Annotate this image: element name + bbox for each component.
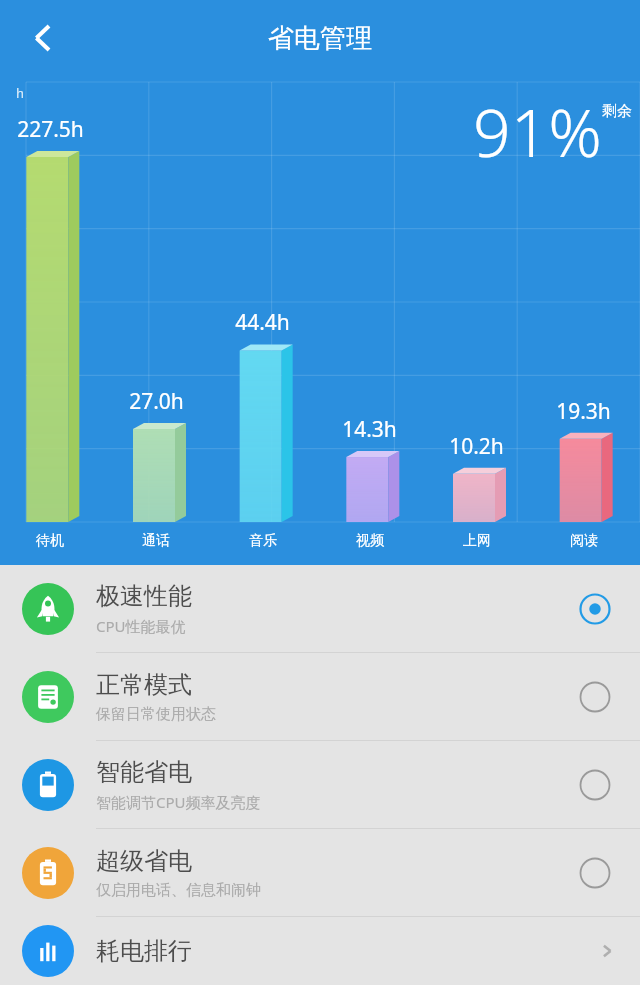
button[interactable]: 极速性能 xyxy=(0,565,640,652)
staticText: 19.3h xyxy=(556,397,611,426)
staticText: 通话 xyxy=(142,532,170,550)
staticText: 智能省电 xyxy=(96,757,192,787)
staticText: 227.5h xyxy=(17,115,84,144)
button[interactable]: Select mode xyxy=(572,674,618,720)
button[interactable]: 正常模式 xyxy=(0,653,640,740)
staticText: 保留日常使用状态 xyxy=(96,705,216,724)
staticText: 剩余 xyxy=(602,102,632,121)
button[interactable]: 超级省电 xyxy=(0,829,640,916)
staticText: 待机 xyxy=(36,532,64,550)
button[interactable]: Select mode xyxy=(572,762,618,808)
staticText: 91% xyxy=(473,86,602,176)
staticText: 10.2h xyxy=(449,432,504,461)
staticText: 阅读 xyxy=(570,532,598,550)
staticText: 超级省电 xyxy=(96,846,192,876)
staticText: 14.3h xyxy=(342,415,397,444)
staticText: 44.4h xyxy=(235,308,290,337)
button[interactable]: Select mode xyxy=(572,586,618,632)
button[interactable]: Back xyxy=(14,9,72,67)
button[interactable]: 智能省电 xyxy=(0,741,640,828)
staticText: 正常模式 xyxy=(96,670,192,700)
staticText: 耗电排行 xyxy=(96,936,596,966)
staticText: 仅启用电话、信息和闹钟 xyxy=(96,881,261,900)
staticText: CPU性能最优 xyxy=(96,616,186,636)
staticText: 极速性能 xyxy=(96,581,192,611)
staticText: 上网 xyxy=(463,532,491,550)
button[interactable]: Select mode xyxy=(572,850,618,896)
staticText: 音乐 xyxy=(249,532,277,550)
staticText: h xyxy=(16,84,25,102)
button[interactable]: 耗电排行 xyxy=(0,917,640,985)
staticText: 27.0h xyxy=(129,387,184,416)
staticText: 智能调节CPU频率及亮度 xyxy=(96,792,261,812)
staticText: 省电管理 xyxy=(268,22,372,55)
staticText: 视频 xyxy=(356,532,384,550)
